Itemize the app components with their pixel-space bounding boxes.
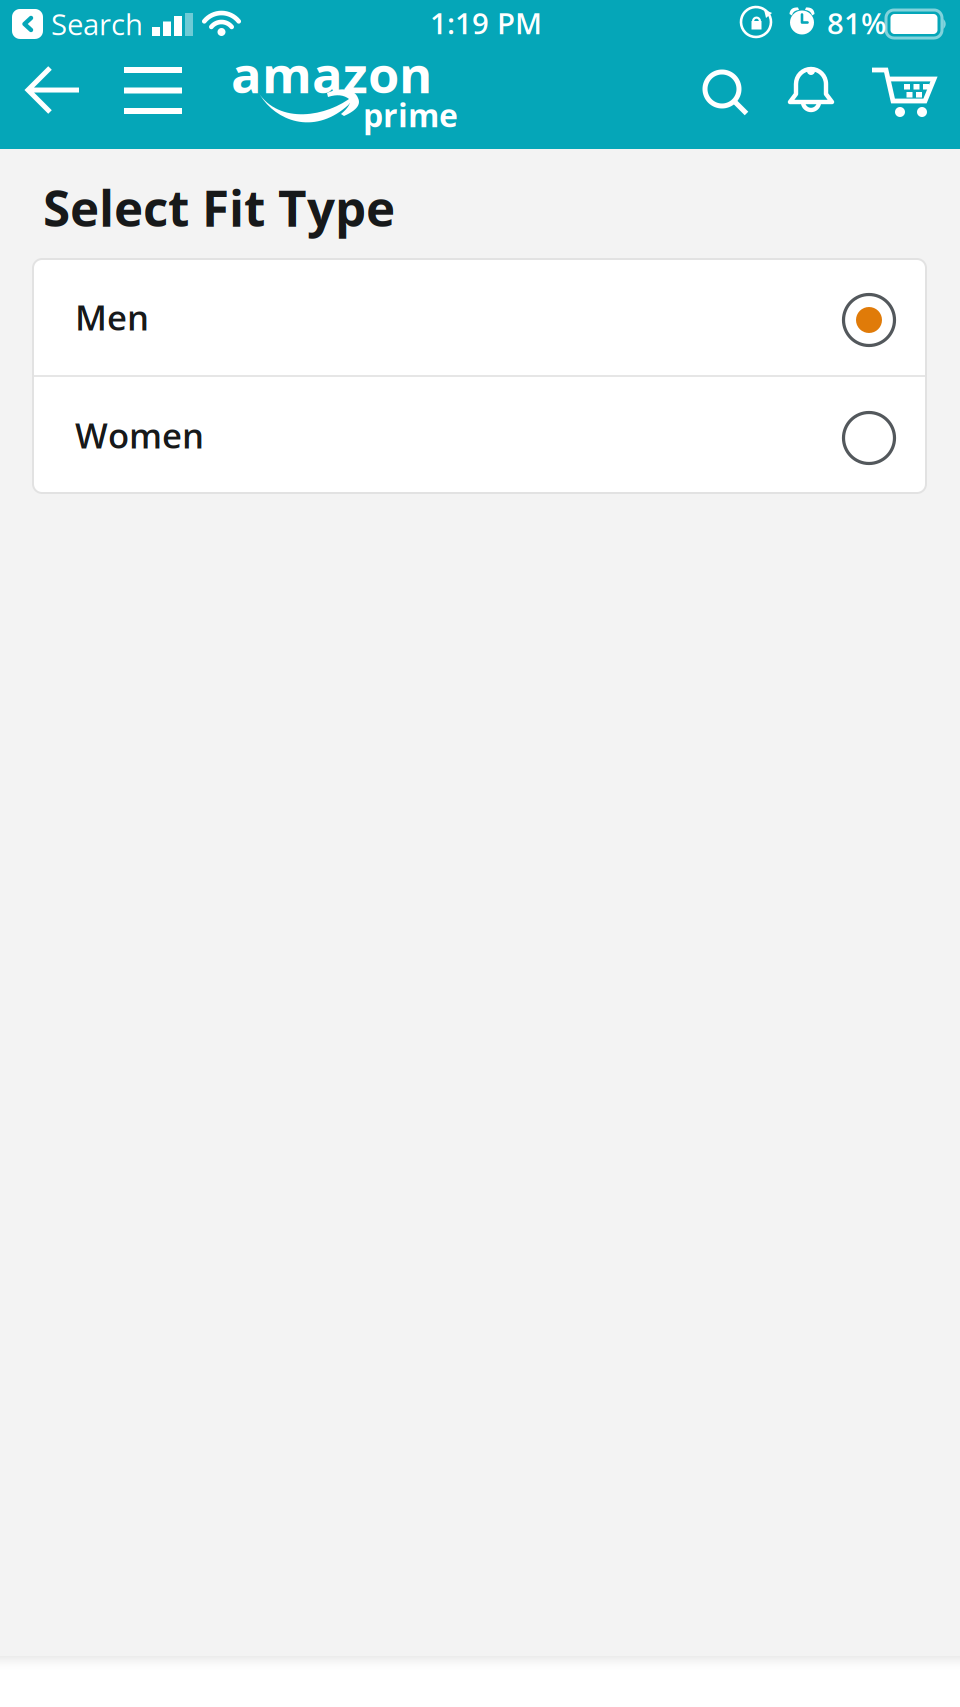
staticText: Search xyxy=(51,4,143,44)
button[interactable]: Back to Search xyxy=(12,4,143,44)
staticText: Select Fit Type xyxy=(43,174,395,241)
staticText: prime xyxy=(363,93,458,137)
button[interactable]: Women xyxy=(33,377,926,493)
button[interactable]: Search xyxy=(689,56,765,132)
staticText: Men xyxy=(75,293,149,341)
button[interactable]: Back xyxy=(15,55,91,125)
button[interactable]: Menu xyxy=(110,53,196,128)
staticText: Women xyxy=(75,411,204,459)
staticText: 81% xyxy=(827,3,886,43)
button[interactable]: Shopping cart xyxy=(858,54,948,132)
button[interactable]: Notifications xyxy=(775,52,847,128)
button[interactable]: Men xyxy=(33,259,926,375)
staticText: amazon xyxy=(231,39,432,108)
staticText: 1:19 PM xyxy=(430,3,542,43)
